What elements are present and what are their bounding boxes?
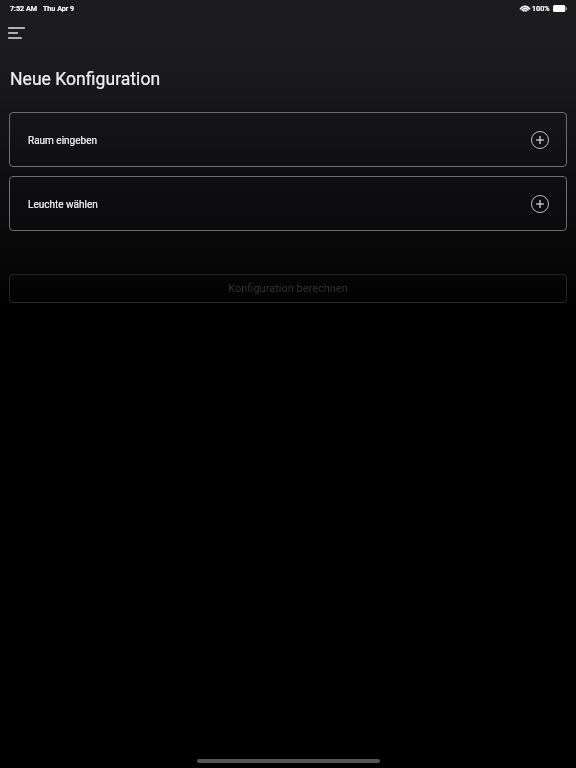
- staticText: 100%: [532, 4, 550, 12]
- button[interactable]: Add: [530, 194, 550, 214]
- button[interactable]: Konfiguration berechnen: [9, 274, 567, 303]
- staticText: Thu Apr 9: [43, 4, 75, 12]
- staticText: Raum eingeben: [28, 135, 97, 147]
- staticText: Konfiguration berechnen: [228, 282, 348, 295]
- button[interactable]: Open navigation menu: [3, 19, 30, 46]
- staticText: Neue Konfiguration: [10, 69, 161, 90]
- staticText: Leuchte wählen: [28, 199, 98, 211]
- button[interactable]: Add: [530, 130, 550, 150]
- staticText: 7:52 AM: [10, 4, 38, 12]
- button[interactable]: Raum eingeben: [9, 112, 567, 167]
- button[interactable]: Leuchte wählen: [9, 176, 567, 231]
